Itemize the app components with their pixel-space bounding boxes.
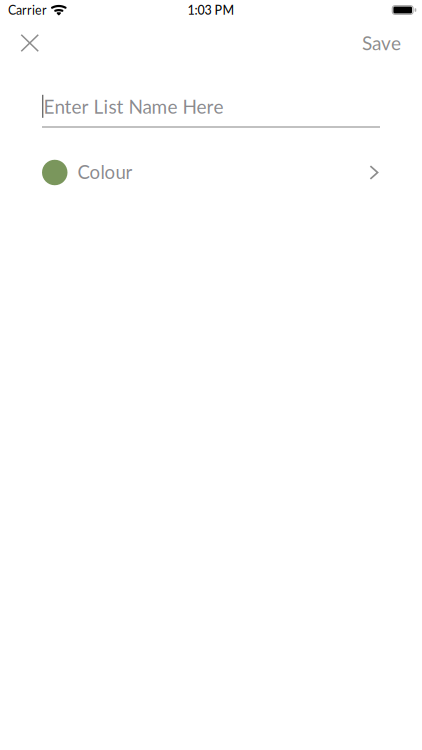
staticText: Enter List Name Here	[43, 95, 223, 118]
button[interactable]: Colour	[42, 150, 378, 194]
staticText: Colour	[77, 161, 132, 183]
staticText: Carrier	[8, 3, 47, 17]
button[interactable]: Save	[346, 22, 422, 64]
staticText: 1:03 PM	[187, 2, 234, 17]
button[interactable]: Close	[0, 23, 55, 63]
staticText: Save	[362, 32, 401, 54]
